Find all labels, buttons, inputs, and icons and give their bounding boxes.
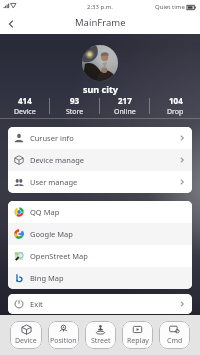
staticText: Online [114, 107, 136, 117]
staticText: Drop [167, 107, 184, 117]
staticText: 104 [169, 95, 183, 106]
button[interactable]: Google Map [8, 223, 192, 245]
button[interactable]: Cmd [159, 321, 190, 349]
staticText: Position [50, 336, 77, 346]
staticText: Store [66, 107, 84, 117]
button[interactable]: Back [0, 13, 21, 34]
staticText: 93 [70, 95, 80, 106]
staticText: Bing Map [30, 273, 64, 283]
staticText: QQ Map [30, 207, 60, 217]
button[interactable]: Street [85, 321, 116, 349]
staticText: MainFrame [75, 16, 126, 29]
staticText: Curuser info [30, 133, 74, 143]
staticText: 2:33 p.m. [87, 3, 113, 11]
button[interactable]: Profile photo [82, 45, 118, 81]
staticText: Device [15, 336, 37, 346]
staticText: Device manage [30, 155, 84, 165]
staticText: 414 [18, 95, 32, 106]
button[interactable]: Position [48, 321, 79, 349]
button[interactable]: OpenStreet Map [8, 245, 192, 267]
button[interactable]: Bing Map [8, 267, 192, 289]
staticText: Street [91, 336, 111, 346]
button[interactable]: Replay [122, 321, 153, 349]
button[interactable]: Device [10, 321, 42, 349]
staticText: User manage [30, 177, 78, 187]
staticText: Cmd [167, 336, 183, 346]
staticText: Exit [30, 299, 43, 309]
button[interactable]: QQ Map [8, 201, 192, 223]
staticText: Device [14, 107, 36, 117]
button[interactable]: User manage [8, 171, 192, 193]
button[interactable]: Device manage [8, 149, 192, 171]
staticText: OpenStreet Map [30, 251, 88, 261]
staticText: Google Map [30, 229, 73, 239]
staticText: Replay [127, 336, 149, 346]
staticText: 217 [118, 95, 132, 106]
staticText: Quiet time [155, 3, 185, 11]
button[interactable]: Curuser info [8, 127, 192, 149]
button[interactable]: Exit [8, 294, 192, 314]
staticText: sun city [83, 83, 118, 95]
